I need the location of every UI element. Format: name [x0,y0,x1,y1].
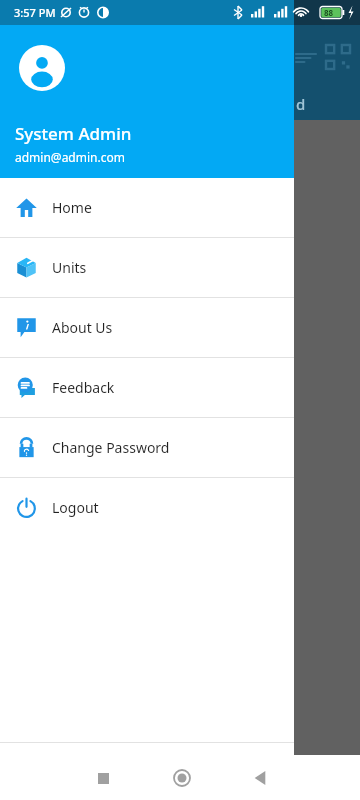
button[interactable]: Home [167,763,197,793]
staticText: admin@admin.com [15,149,125,165]
staticText: System Admin [15,122,132,145]
button[interactable]: Units [0,238,294,297]
staticText: 88 [324,7,334,18]
button[interactable]: Filter [296,48,316,68]
button[interactable]: About Us [0,298,294,357]
button[interactable]: Home [0,178,294,237]
button[interactable]: Back [246,764,274,792]
button[interactable]: Change Password [0,418,294,477]
staticText: Feedback [52,378,115,397]
staticText: 3:57 PM [14,5,56,20]
staticText: Home [52,198,92,217]
staticText: About Us [52,318,113,337]
button[interactable]: Scan QR code [326,45,350,69]
button[interactable]: Recent apps [90,765,116,791]
staticText: d [296,94,306,114]
button[interactable]: Logout [0,478,294,537]
staticText: Units [52,258,87,277]
button[interactable]: Feedback [0,358,294,417]
staticText: Logout [52,498,99,517]
staticText: Change Password [52,438,170,457]
